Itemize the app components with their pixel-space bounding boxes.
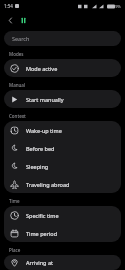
staticText: Traveling abroad xyxy=(26,181,70,188)
button[interactable]: Mode active xyxy=(4,59,121,77)
button[interactable]: Time period xyxy=(4,224,121,242)
staticText: Before bed xyxy=(26,145,55,152)
staticText: Modes xyxy=(9,51,24,57)
button[interactable]: Sleeping xyxy=(4,157,121,175)
button[interactable]: Wake-up time xyxy=(4,121,121,139)
button[interactable]: Specific time xyxy=(4,206,121,224)
button[interactable]: Pause mode xyxy=(17,14,30,27)
button[interactable]: Before bed xyxy=(4,139,121,157)
staticText: 1:54 xyxy=(4,3,13,9)
staticText: Wake-up time xyxy=(26,127,62,134)
button[interactable]: Start manually xyxy=(4,90,121,108)
staticText: Sleeping xyxy=(26,163,49,170)
button[interactable]: Arriving at xyxy=(4,255,121,270)
button[interactable]: Back xyxy=(4,14,17,27)
staticText: Specific time xyxy=(26,212,59,219)
staticText: Time period xyxy=(26,230,58,237)
button[interactable]: Search xyxy=(4,31,121,46)
staticText: Context xyxy=(9,113,26,119)
staticText: Mode active xyxy=(26,65,58,72)
button[interactable]: Traveling abroad xyxy=(4,175,121,193)
staticText: Start manually xyxy=(26,96,64,103)
staticText: Place xyxy=(9,247,21,253)
staticText: Search xyxy=(12,35,30,42)
staticText: Time xyxy=(9,198,20,204)
staticText: Arriving at xyxy=(26,259,53,266)
staticText: 69% xyxy=(113,4,121,9)
staticText: Manual xyxy=(9,82,26,88)
